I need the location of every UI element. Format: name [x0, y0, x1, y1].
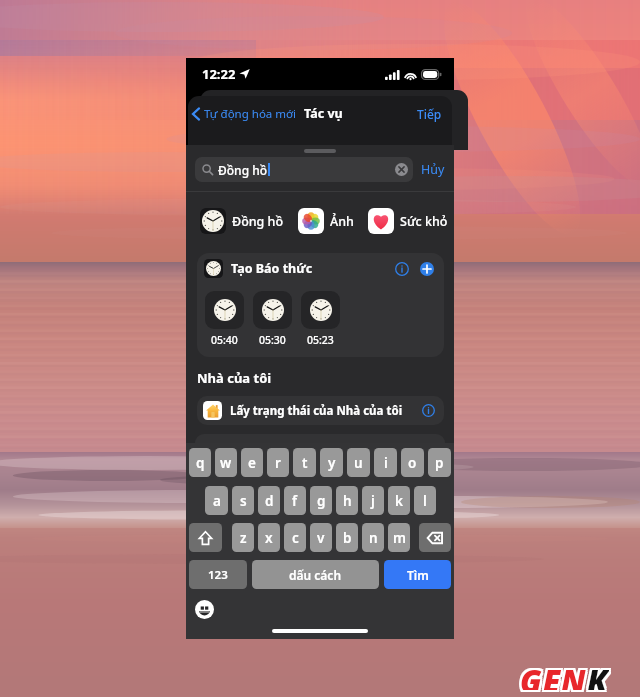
button[interactable]: q: [189, 448, 211, 477]
staticText: c: [292, 529, 299, 547]
staticText: x: [265, 529, 273, 547]
button[interactable]: m: [388, 523, 410, 552]
button[interactable]: Tự động hóa mới: [192, 105, 343, 122]
staticText: Đồng hồ: [218, 162, 268, 178]
button[interactable]: Đồng hồ: [200, 208, 284, 234]
other: Clear text: [395, 163, 408, 176]
button[interactable]: e: [241, 448, 263, 477]
button[interactable]: 05:30: [253, 291, 292, 347]
other: Information: [422, 404, 435, 417]
staticText: K: [585, 662, 607, 692]
button[interactable]: t: [293, 448, 316, 477]
button[interactable]: u: [347, 448, 370, 477]
staticText: GEN: [518, 658, 585, 688]
staticText: 05:30: [259, 333, 286, 347]
staticText: Nhà của tôi: [197, 369, 272, 387]
button[interactable]: f: [284, 486, 306, 515]
button[interactable]: k: [388, 486, 410, 515]
staticText: o: [408, 454, 417, 472]
staticText: r: [275, 454, 281, 472]
staticText: g: [317, 492, 326, 510]
staticText: GEN: [522, 662, 589, 692]
button[interactable]: dấu cách: [252, 560, 379, 589]
staticText: s: [240, 492, 247, 510]
button[interactable]: Tìm: [384, 560, 451, 589]
button[interactable]: 05:40: [205, 291, 244, 347]
staticText: w: [220, 454, 232, 472]
staticText: Đồng hồ: [232, 213, 284, 230]
staticText: GEN: [520, 658, 587, 688]
button[interactable]: Add: [420, 262, 434, 276]
button[interactable]: h: [336, 486, 358, 515]
button[interactable]: l: [414, 486, 436, 515]
staticText: GEN: [522, 658, 589, 688]
staticText: Ảnh: [330, 213, 354, 230]
staticText: K: [587, 660, 609, 690]
staticText: b: [343, 529, 352, 547]
button[interactable]: Information: [395, 262, 409, 276]
staticText: K: [585, 660, 607, 690]
button[interactable]: g: [310, 486, 332, 515]
button[interactable]: y: [320, 448, 343, 477]
staticText: Lấy trạng thái của Nhà của tôi: [230, 403, 403, 419]
button[interactable]: Backspace: [419, 523, 451, 552]
staticText: e: [248, 454, 256, 472]
staticText: z: [240, 529, 247, 547]
staticText: v: [317, 529, 325, 547]
button[interactable]: v: [310, 523, 332, 552]
staticText: h: [343, 492, 352, 510]
button[interactable]: a: [205, 486, 228, 515]
button[interactable]: Emoji keyboard: [195, 600, 214, 619]
button[interactable]: 05:23: [301, 291, 340, 347]
button[interactable]: n: [362, 523, 384, 552]
staticText: 123: [208, 567, 228, 583]
staticText: Sức khỏ: [400, 213, 448, 230]
button[interactable]: i: [374, 448, 397, 477]
button[interactable]: x: [258, 523, 280, 552]
staticText: f: [292, 492, 298, 510]
staticText: K: [589, 662, 611, 692]
staticText: k: [395, 492, 403, 510]
button[interactable]: Tạo Báo thức: [204, 259, 436, 278]
staticText: GEN: [522, 660, 589, 690]
button[interactable]: r: [267, 448, 289, 477]
staticText: dấu cách: [289, 567, 342, 583]
staticText: u: [354, 454, 363, 472]
staticText: t: [302, 454, 308, 472]
button[interactable]: s: [232, 486, 254, 515]
staticText: q: [196, 454, 205, 472]
button[interactable]: Ảnh: [298, 208, 354, 234]
staticText: K: [585, 658, 607, 688]
staticText: Tìm: [407, 567, 429, 583]
button[interactable]: Đồng hồ: [195, 157, 413, 182]
button[interactable]: d: [258, 486, 280, 515]
button[interactable]: w: [215, 448, 237, 477]
staticText: 12:22: [202, 65, 236, 83]
button[interactable]: z: [232, 523, 254, 552]
staticText: 05:23: [307, 333, 334, 347]
staticText: K: [587, 658, 609, 688]
button[interactable]: p: [428, 448, 451, 477]
button[interactable]: Hủy: [421, 161, 445, 178]
staticText: GEN: [518, 660, 585, 690]
button[interactable]: Tiếp: [417, 106, 442, 122]
button[interactable]: Sức khỏ: [368, 208, 448, 234]
staticText: K: [587, 662, 609, 692]
staticText: K: [589, 658, 611, 688]
button[interactable]: j: [362, 486, 384, 515]
button[interactable]: b: [336, 523, 358, 552]
staticText: GEN: [518, 662, 585, 692]
button[interactable]: 123: [189, 560, 247, 589]
button[interactable]: Lấy trạng thái của Nhà của tôi: [197, 396, 444, 425]
button[interactable]: o: [401, 448, 424, 477]
staticText: n: [369, 529, 378, 547]
staticText: Tác vụ: [304, 105, 343, 122]
button[interactable]: c: [284, 523, 306, 552]
staticText: Tự động hóa mới: [204, 106, 297, 122]
staticText: GEN: [520, 660, 587, 690]
button[interactable]: Shift: [189, 523, 222, 552]
staticText: y: [328, 454, 336, 472]
staticText: K: [589, 660, 611, 690]
staticText: l: [423, 492, 427, 510]
staticText: m: [393, 529, 406, 547]
